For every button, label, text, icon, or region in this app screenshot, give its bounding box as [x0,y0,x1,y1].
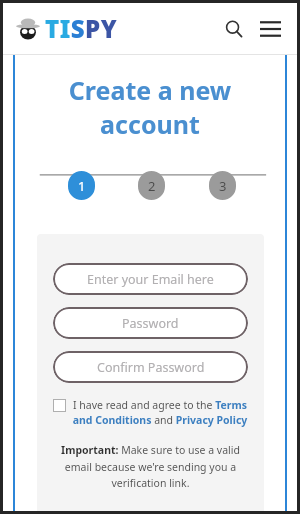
button[interactable]: I have read and agree to the Terms and C… [53,398,248,427]
staticText: TISPY [45,12,118,45]
staticText: Password [122,315,179,332]
button[interactable]: Password [53,307,248,339]
staticText: I have read and agree to the Terms and C… [72,398,248,427]
button[interactable]: Enter your Email here [53,263,248,295]
button[interactable]: Search [219,14,249,44]
staticText: Enter your Email here [87,271,214,288]
staticText: 3 [219,177,227,195]
staticText: Important: Make sure to use a valid emai… [57,443,244,490]
staticText: Create a new account [29,73,271,141]
button[interactable]: 3 [209,171,236,200]
staticText: 2 [148,177,156,195]
button[interactable]: Confirm Password [53,351,248,383]
button[interactable]: 2 [138,171,165,200]
staticText: 1 [78,177,86,195]
button[interactable]: 1 [68,171,95,200]
staticText: Confirm Password [97,359,205,376]
button[interactable]: Menu [255,14,285,44]
